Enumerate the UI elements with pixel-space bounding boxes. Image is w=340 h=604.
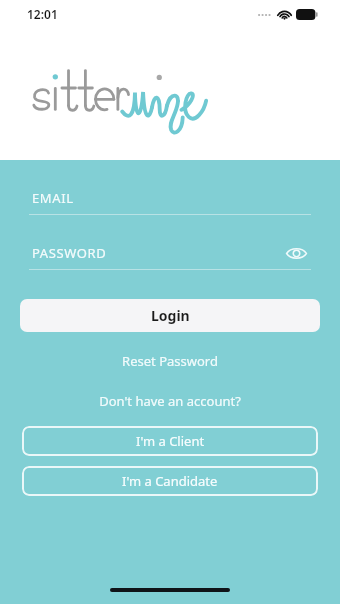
staticText: EMAIL [32,189,74,207]
staticText: Don't have an account? [99,392,241,410]
button[interactable]: Login [20,299,320,332]
staticText: I'm a Client [136,432,205,450]
button[interactable]: I'm a Candidate [22,466,318,496]
button[interactable]: Show password [281,241,311,265]
staticText: PASSWORD [32,244,107,262]
staticText: I'm a Candidate [122,472,218,490]
button[interactable]: Don't have an account? [87,390,253,412]
staticText: 12:01 [27,6,58,22]
button[interactable]: Reset Password [110,350,230,372]
button[interactable]: I'm a Client [22,426,318,456]
staticText: Reset Password [122,352,218,370]
staticText: Login [151,306,190,325]
